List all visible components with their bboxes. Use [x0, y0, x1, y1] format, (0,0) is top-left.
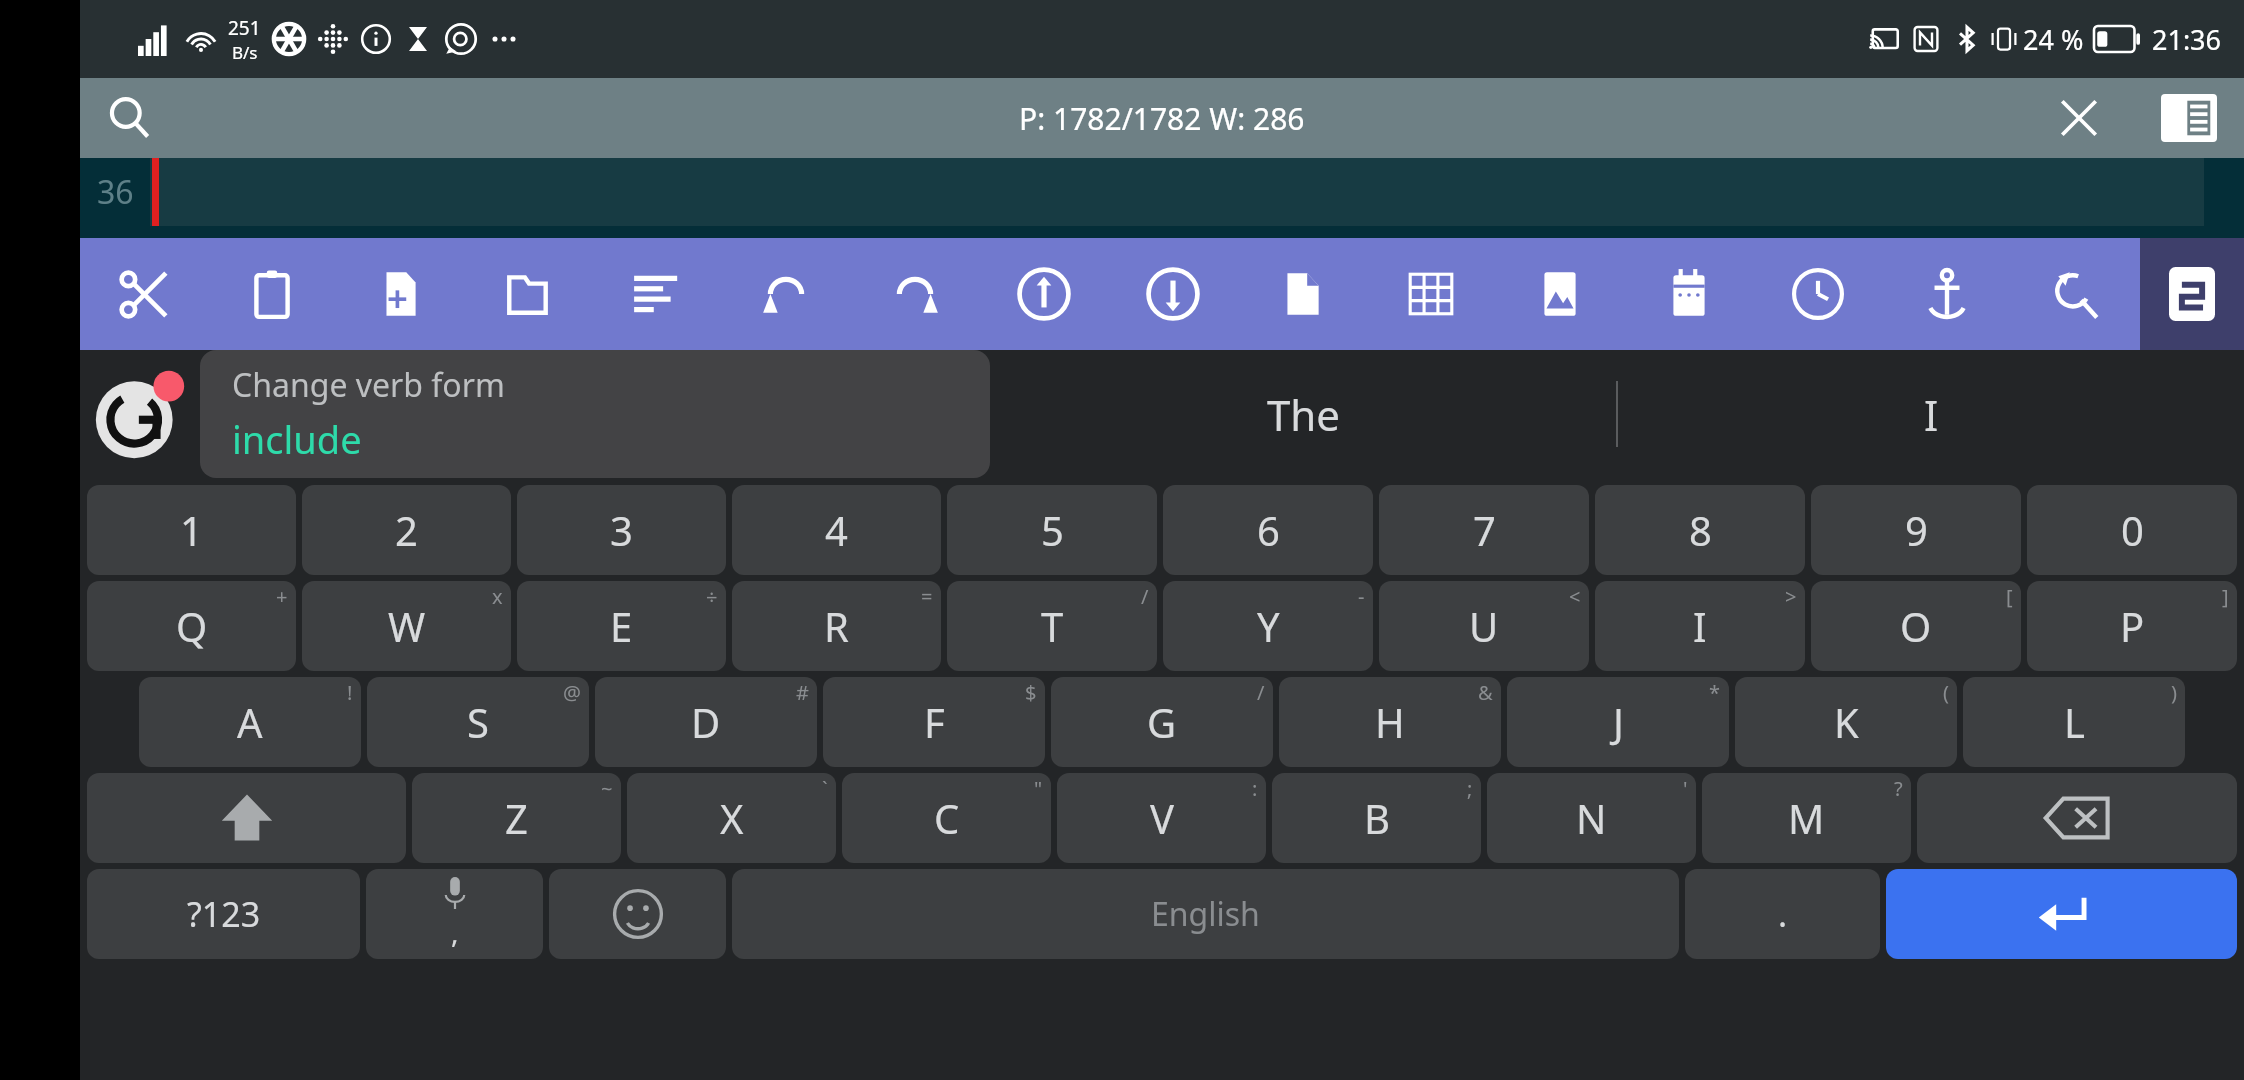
button[interactable]: L — [1963, 677, 2185, 767]
button[interactable]: T — [947, 581, 1157, 671]
button[interactable]: Search — [80, 78, 180, 158]
button[interactable]: W — [302, 581, 511, 671]
button[interactable]: New file — [336, 238, 464, 350]
button[interactable]: 0 — [2027, 485, 2237, 575]
button[interactable]: Image — [1495, 238, 1624, 350]
staticText: & — [1478, 679, 1493, 706]
button[interactable]: V — [1057, 773, 1266, 863]
button[interactable]: I — [1618, 350, 2244, 478]
staticText: ] — [2222, 583, 2229, 610]
button[interactable]: 2 — [302, 485, 511, 575]
button[interactable]: Table — [1366, 238, 1495, 350]
staticText: [ — [2006, 583, 2013, 610]
button[interactable]: H — [1279, 677, 1501, 767]
button[interactable]: Symbols — [87, 869, 360, 959]
button[interactable]: P — [2027, 581, 2237, 671]
staticText: 8 — [1689, 503, 1712, 557]
button[interactable]: Paste — [208, 238, 336, 350]
button[interactable]: Z — [412, 773, 621, 863]
button[interactable]: J — [1507, 677, 1729, 767]
button[interactable]: Menu — [2134, 78, 2244, 158]
staticText: = — [921, 583, 933, 610]
button[interactable]: D — [595, 677, 817, 767]
staticText: ` — [822, 775, 828, 802]
staticText: J — [1613, 695, 1624, 749]
staticText: P — [2120, 599, 2145, 653]
button[interactable]: K — [1735, 677, 1957, 767]
button[interactable]: Undo — [721, 238, 850, 350]
button[interactable]: B — [1272, 773, 1481, 863]
button[interactable]: Page — [1237, 238, 1366, 350]
staticText: @ — [563, 679, 581, 706]
button[interactable]: Clock — [1753, 238, 1882, 350]
button[interactable]: 9 — [1811, 485, 2021, 575]
staticText: N — [1576, 791, 1607, 845]
staticText: Y — [1257, 599, 1280, 653]
button[interactable]: Format — [592, 238, 721, 350]
button[interactable]: Change verb form — [200, 350, 990, 478]
button[interactable]: Open folder — [464, 238, 592, 350]
button[interactable]: F — [823, 677, 1045, 767]
staticText: O — [1900, 599, 1932, 653]
button[interactable]: 3 — [517, 485, 726, 575]
button[interactable]: Close — [2024, 78, 2134, 158]
button[interactable]: 6 — [1163, 485, 1373, 575]
staticText: 21:36 — [2152, 21, 2222, 58]
staticText: V — [1150, 791, 1174, 845]
button[interactable]: A — [139, 677, 361, 767]
button[interactable]: S — [367, 677, 589, 767]
button[interactable]: Shift — [87, 773, 406, 863]
staticText: B — [1364, 791, 1390, 845]
button[interactable]: O — [1811, 581, 2021, 671]
staticText: S — [467, 695, 489, 749]
button[interactable]: The — [990, 350, 1616, 478]
button[interactable]: 4 — [732, 485, 941, 575]
button[interactable]: Cut — [80, 238, 208, 350]
button[interactable]: Voice input, comma — [366, 869, 543, 959]
button[interactable]: 5 — [947, 485, 1157, 575]
button[interactable]: Backspace — [1917, 773, 2237, 863]
button[interactable]: G — [1051, 677, 1273, 767]
button[interactable]: N — [1487, 773, 1696, 863]
button[interactable]: Tabs: 2 — [2140, 238, 2244, 350]
button[interactable]: Space, English — [732, 869, 1679, 959]
button[interactable]: Page down — [1108, 238, 1237, 350]
button[interactable]: Anchor — [1882, 238, 2011, 350]
staticText: The — [1267, 386, 1340, 443]
button[interactable]: Calendar — [1624, 238, 1753, 350]
button[interactable]: Replace — [2011, 238, 2140, 350]
staticText: Z — [505, 791, 528, 845]
button[interactable]: Emoji — [549, 869, 726, 959]
button[interactable]: Period — [1685, 869, 1880, 959]
staticText: I — [1924, 386, 1939, 443]
staticText: 1 — [180, 503, 203, 557]
staticText: . — [1778, 891, 1788, 937]
button[interactable]: Enter — [1886, 869, 2237, 959]
button[interactable]: 1 — [87, 485, 296, 575]
button[interactable]: Q — [87, 581, 296, 671]
staticText: 9 — [1905, 503, 1928, 557]
staticText: , — [451, 913, 459, 951]
staticText: 4 — [825, 503, 848, 557]
staticText: " — [1034, 775, 1043, 802]
button[interactable]: Page up — [979, 238, 1108, 350]
button[interactable]: E — [517, 581, 726, 671]
staticText: G — [1147, 695, 1177, 749]
button[interactable]: 8 — [1595, 485, 1805, 575]
button[interactable]: Redo — [850, 238, 979, 350]
button[interactable]: I — [1595, 581, 1805, 671]
staticText: P: 1782/1782 W: 286 — [1019, 98, 1305, 139]
staticText: B/s — [232, 41, 258, 64]
button[interactable]: 7 — [1379, 485, 1589, 575]
button[interactable]: Y — [1163, 581, 1373, 671]
button[interactable]: X — [627, 773, 836, 863]
staticText: * — [1709, 679, 1721, 706]
button[interactable]: R — [732, 581, 941, 671]
staticText: ! — [347, 679, 353, 706]
staticText: W — [388, 599, 426, 653]
button[interactable]: U — [1379, 581, 1589, 671]
button[interactable]: C — [842, 773, 1051, 863]
staticText: Change verb form — [232, 363, 505, 407]
button[interactable]: M — [1702, 773, 1911, 863]
button[interactable]: Grammarly, 3 suggestions — [80, 350, 200, 478]
